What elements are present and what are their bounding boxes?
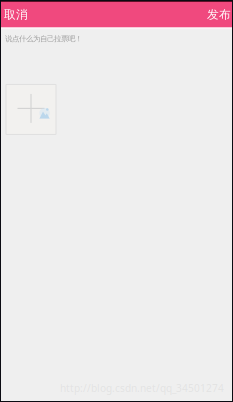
staticText: 取消 [4,7,28,22]
staticText: http://blog.csdn.net/qq_34501274 [60,381,224,395]
staticText: 发布 [207,7,231,22]
staticText: 说点什么为自己拉票吧！ [5,34,82,43]
button[interactable]: 说点什么为自己拉票吧！ [0,30,87,45]
button[interactable]: 取消 [0,2,40,27]
button[interactable]: 添加图片 [6,84,56,134]
button[interactable]: 发布 [195,2,233,27]
